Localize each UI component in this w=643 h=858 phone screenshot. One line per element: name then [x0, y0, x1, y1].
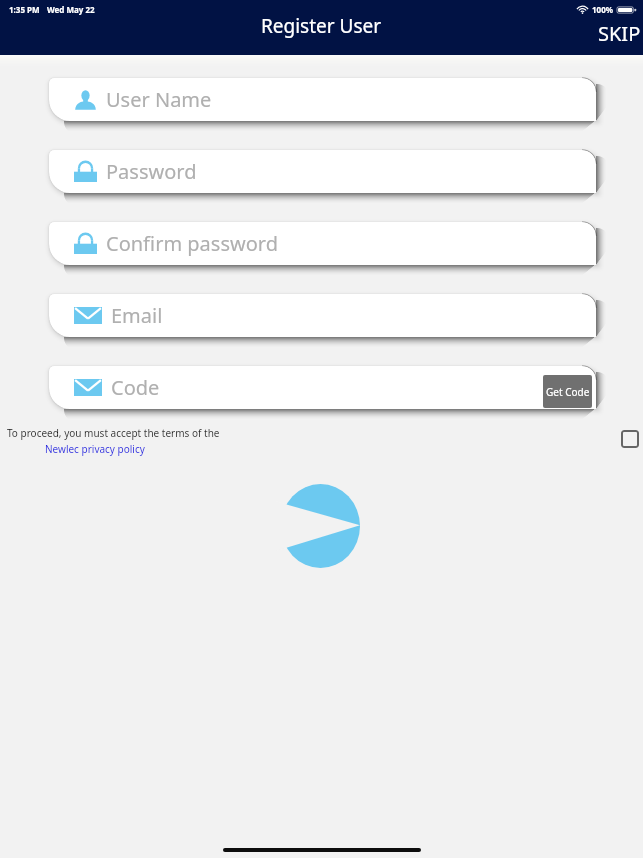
button[interactable]: Confirm password: [49, 222, 596, 265]
button[interactable]: Newlec privacy policy: [44, 442, 146, 456]
button[interactable]: Password: [49, 150, 596, 193]
staticText: Password: [106, 158, 197, 185]
staticText: Code: [111, 374, 160, 401]
staticText: Wed May 22: [47, 4, 95, 15]
staticText: To proceed, you must accept the terms of…: [7, 426, 220, 440]
button[interactable]: User Name: [49, 78, 596, 121]
staticText: User Name: [106, 86, 212, 113]
staticText: 1:35 PM: [9, 4, 40, 15]
button[interactable]: Accept terms: [621, 430, 639, 448]
staticText: SKIP: [598, 20, 641, 47]
staticText: Get Code: [546, 385, 590, 399]
button[interactable]: Email: [49, 294, 596, 337]
button[interactable]: SKIP: [588, 14, 643, 53]
button[interactable]: Code: [49, 366, 596, 409]
staticText: Email: [111, 302, 163, 329]
staticText: Confirm password: [106, 230, 278, 257]
staticText: Register User: [261, 13, 382, 39]
staticText: Newlec privacy policy: [45, 442, 145, 456]
button[interactable]: Get Code: [543, 375, 592, 408]
staticText: 100%: [592, 4, 613, 15]
